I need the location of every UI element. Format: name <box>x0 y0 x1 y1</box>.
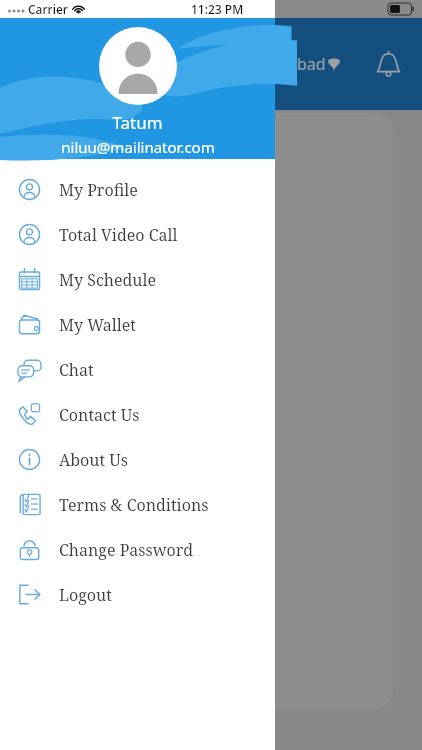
staticText: 11:23 PM <box>191 1 244 17</box>
staticText: Chat <box>59 359 94 381</box>
button[interactable]: Total Video Call <box>0 212 275 257</box>
button[interactable]: Terms & Conditions <box>0 482 275 527</box>
button[interactable]: Change Password <box>0 527 275 572</box>
button[interactable] <box>14 530 393 612</box>
staticText: Carrier <box>28 1 68 17</box>
button[interactable]: Contact Us <box>0 392 275 437</box>
button[interactable]: r Hospitals <box>14 253 393 381</box>
staticText: abad <box>288 53 326 75</box>
staticText: r Hospitals <box>14 341 95 363</box>
button[interactable]: y Doctors <box>14 125 393 253</box>
staticText: Terms & Conditions <box>59 494 209 516</box>
staticText: My Wallet <box>59 314 136 336</box>
staticText: Change Password <box>59 539 194 561</box>
staticText: My Schedule <box>59 269 157 291</box>
staticText: Tatum <box>112 111 163 134</box>
staticText: About Us <box>59 449 128 471</box>
staticText: niluu@mailinator.com <box>61 137 215 157</box>
staticText: My Profile <box>59 179 138 201</box>
button[interactable]: My Schedule <box>0 257 275 302</box>
button[interactable]: My Profile <box>0 167 275 212</box>
staticText: oratory Price Reports <box>14 469 111 512</box>
button[interactable]: My Wallet <box>0 302 275 347</box>
staticText: Total Video Call <box>59 224 178 246</box>
staticText: Logout <box>59 584 112 606</box>
button[interactable]: About Us <box>0 437 275 482</box>
button[interactable]: Notifications <box>366 42 410 86</box>
button[interactable]: oratory Price Reports <box>14 381 393 530</box>
staticText: Contact Us <box>59 404 140 426</box>
button[interactable]: Chat <box>0 347 275 392</box>
staticText: y Doctors <box>14 213 86 235</box>
button[interactable]: Logout <box>0 572 275 617</box>
